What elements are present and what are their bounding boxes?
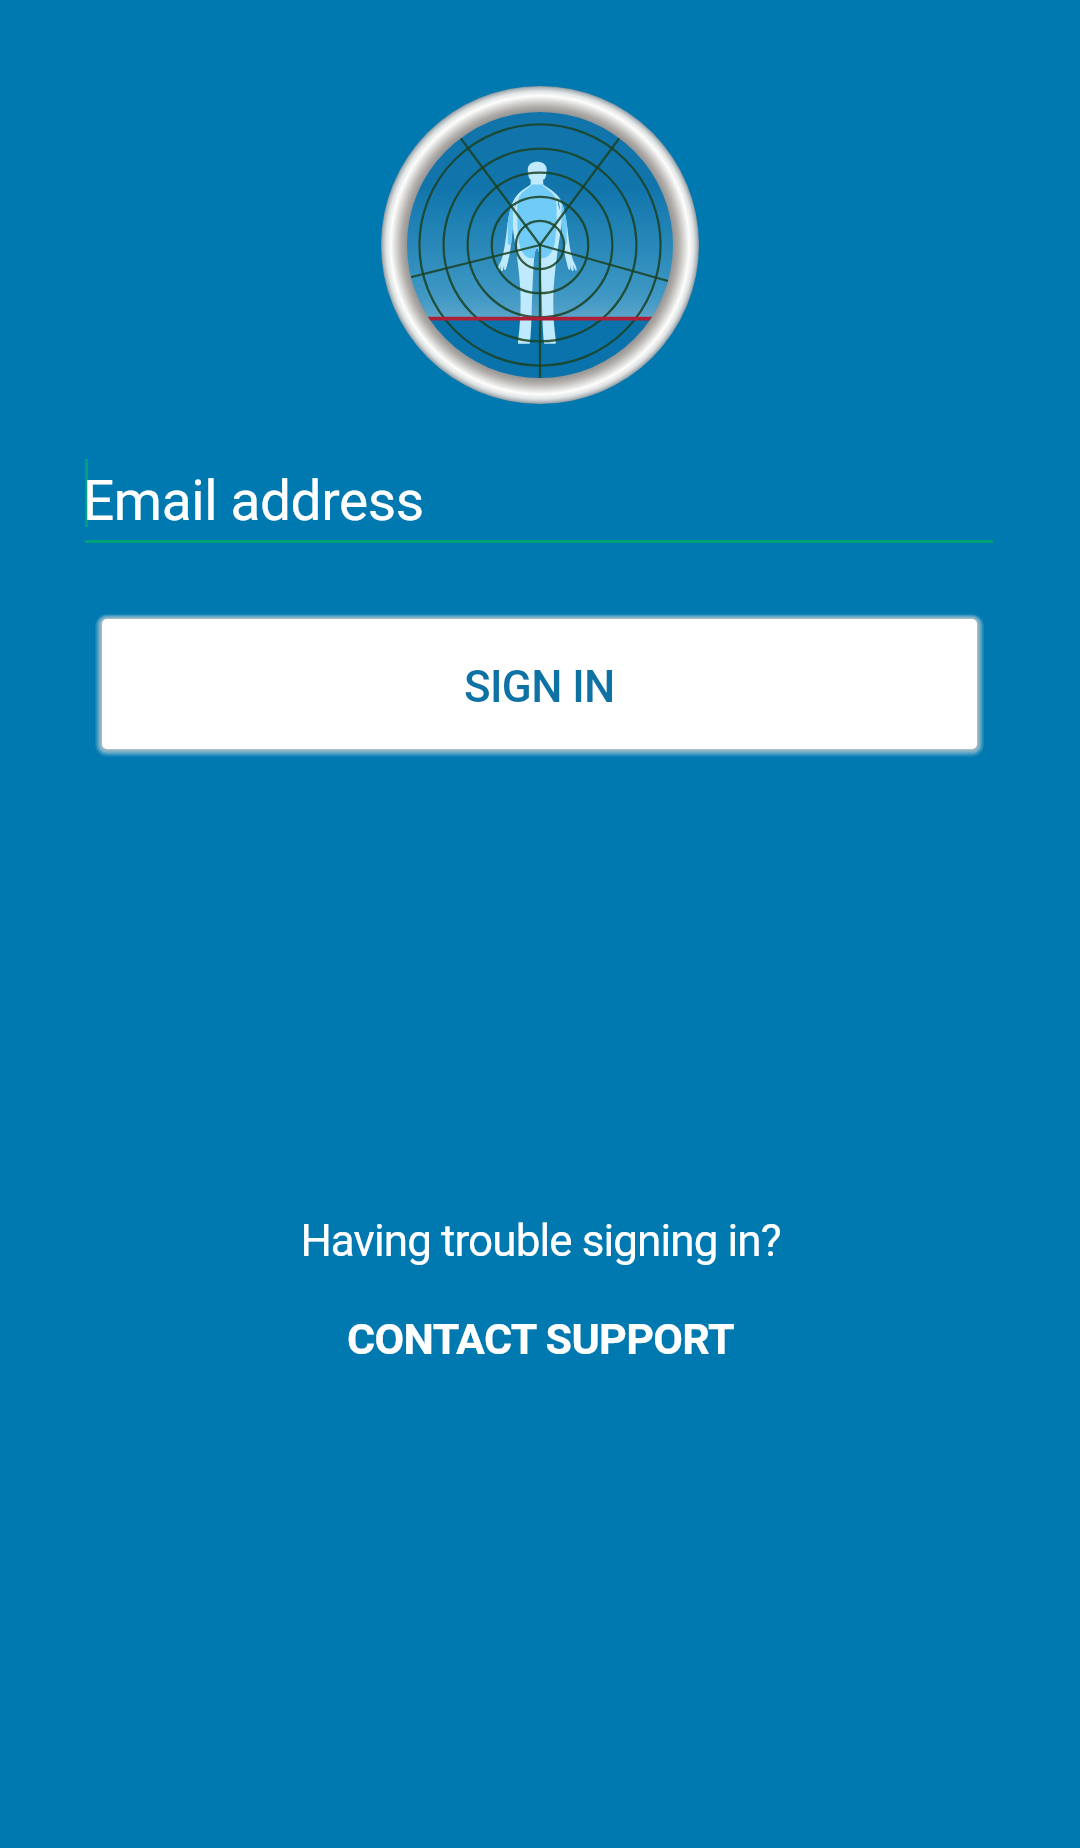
button[interactable]: Email address: [85, 459, 993, 543]
staticText: SIGN IN: [464, 661, 615, 713]
button[interactable]: CONTACT SUPPORT: [331, 1302, 750, 1376]
staticText: CONTACT SUPPORT: [347, 1314, 734, 1364]
button[interactable]: SIGN IN: [102, 619, 977, 749]
staticText: Email address: [83, 469, 424, 533]
staticText: Having trouble signing in?: [300, 1215, 781, 1267]
